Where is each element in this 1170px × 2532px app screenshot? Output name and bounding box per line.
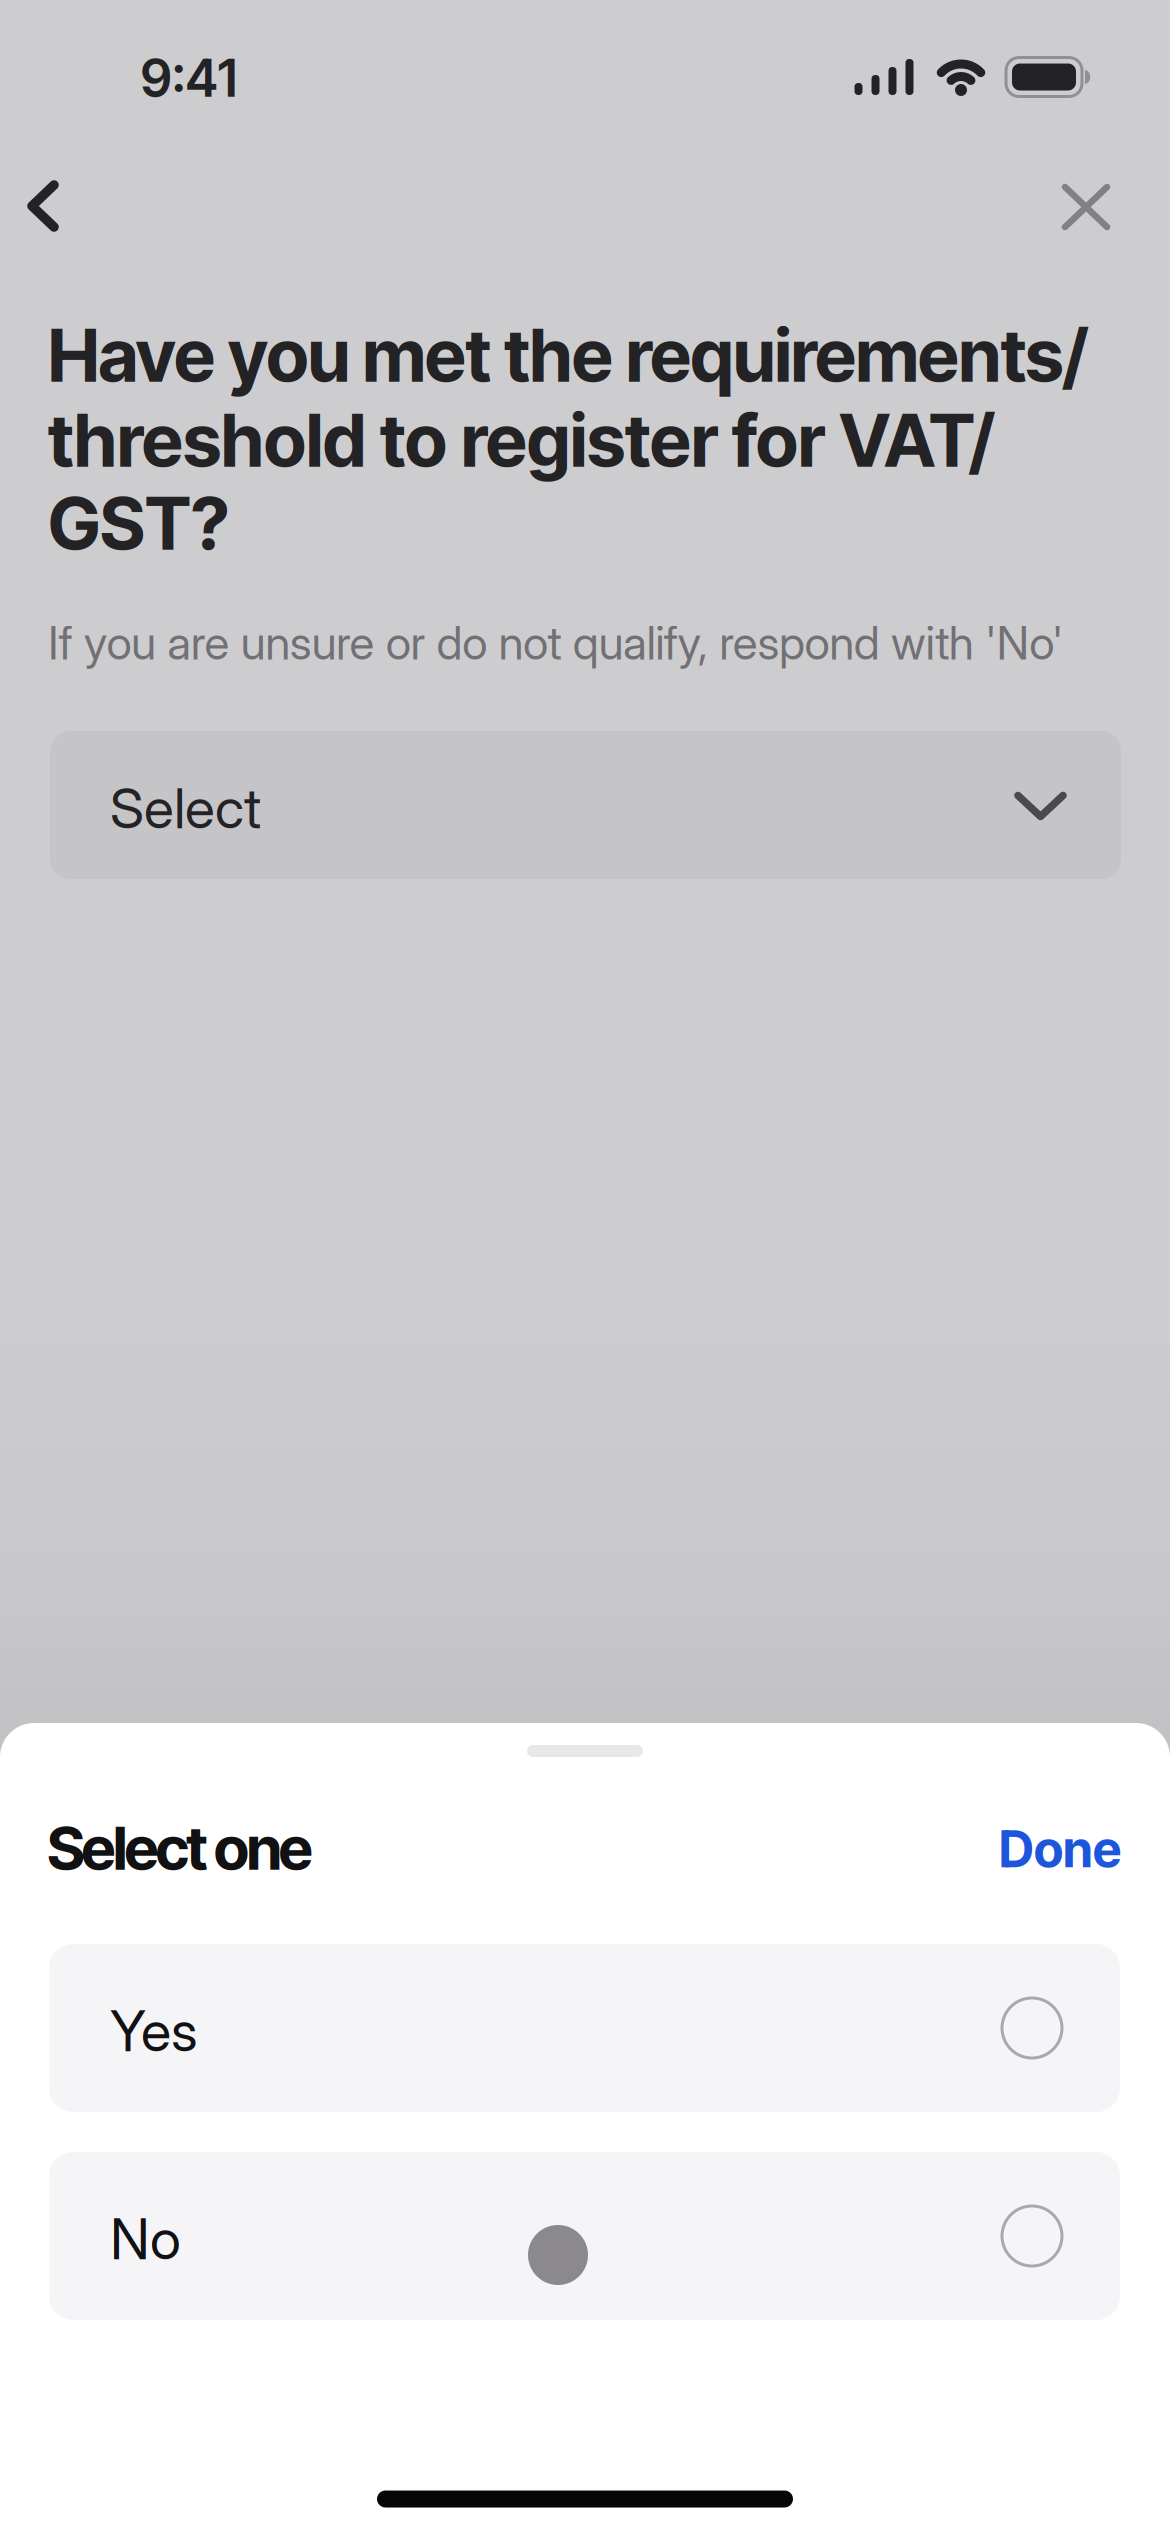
button[interactable]: Close xyxy=(1043,165,1129,249)
staticText: No xyxy=(110,2205,181,2273)
button[interactable]: No xyxy=(49,2152,1120,2320)
staticText: Have you met the requirements/ xyxy=(48,312,1089,399)
staticText: Done xyxy=(999,1819,1121,1879)
staticText: threshold to register for VAT/ xyxy=(48,397,995,484)
staticText: If you are unsure or do not qualify, res… xyxy=(48,615,1064,671)
staticText: Yes xyxy=(110,1997,198,2065)
button[interactable]: Select xyxy=(50,731,1121,879)
button[interactable]: Yes xyxy=(49,1944,1120,2112)
button[interactable]: Done xyxy=(989,1809,1131,1889)
button[interactable]: Back xyxy=(10,163,76,249)
staticText: GST? xyxy=(48,480,229,567)
staticText: 9:41 xyxy=(140,47,237,109)
staticText: Select xyxy=(110,774,261,841)
staticText: Select one xyxy=(47,1812,313,1884)
